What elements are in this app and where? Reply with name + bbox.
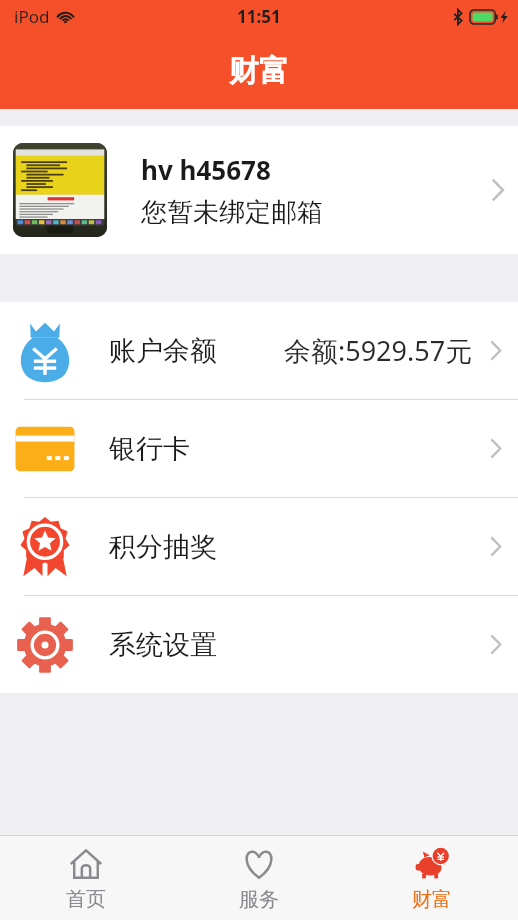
staticText: 银行卡 [109,432,190,466]
button[interactable]: 系统设置 [0,596,518,693]
button[interactable]: 积分抽奖 [0,498,518,595]
staticText: 您暂未绑定邮箱 [141,196,323,229]
button[interactable]: 首页 [0,836,172,920]
staticText: 余额:5929.57元 [284,332,473,369]
button[interactable]: 银行卡 [0,400,518,497]
button[interactable]: 账户余额 [0,302,518,399]
button[interactable]: 服务 [172,836,345,920]
staticText: 账户余额 [109,334,217,368]
button[interactable]: hv h45678 [0,126,518,254]
staticText: 积分抽奖 [109,530,217,564]
staticText: 11:51 [237,5,281,28]
staticText: 服务 [239,887,279,912]
staticText: hv h45678 [141,152,271,187]
button[interactable]: 财富 [345,836,518,920]
staticText: 财富 [229,52,289,90]
staticText: iPod [14,5,50,28]
staticText: 首页 [66,887,106,912]
staticText: 财富 [412,887,452,912]
staticText: 系统设置 [109,628,217,662]
